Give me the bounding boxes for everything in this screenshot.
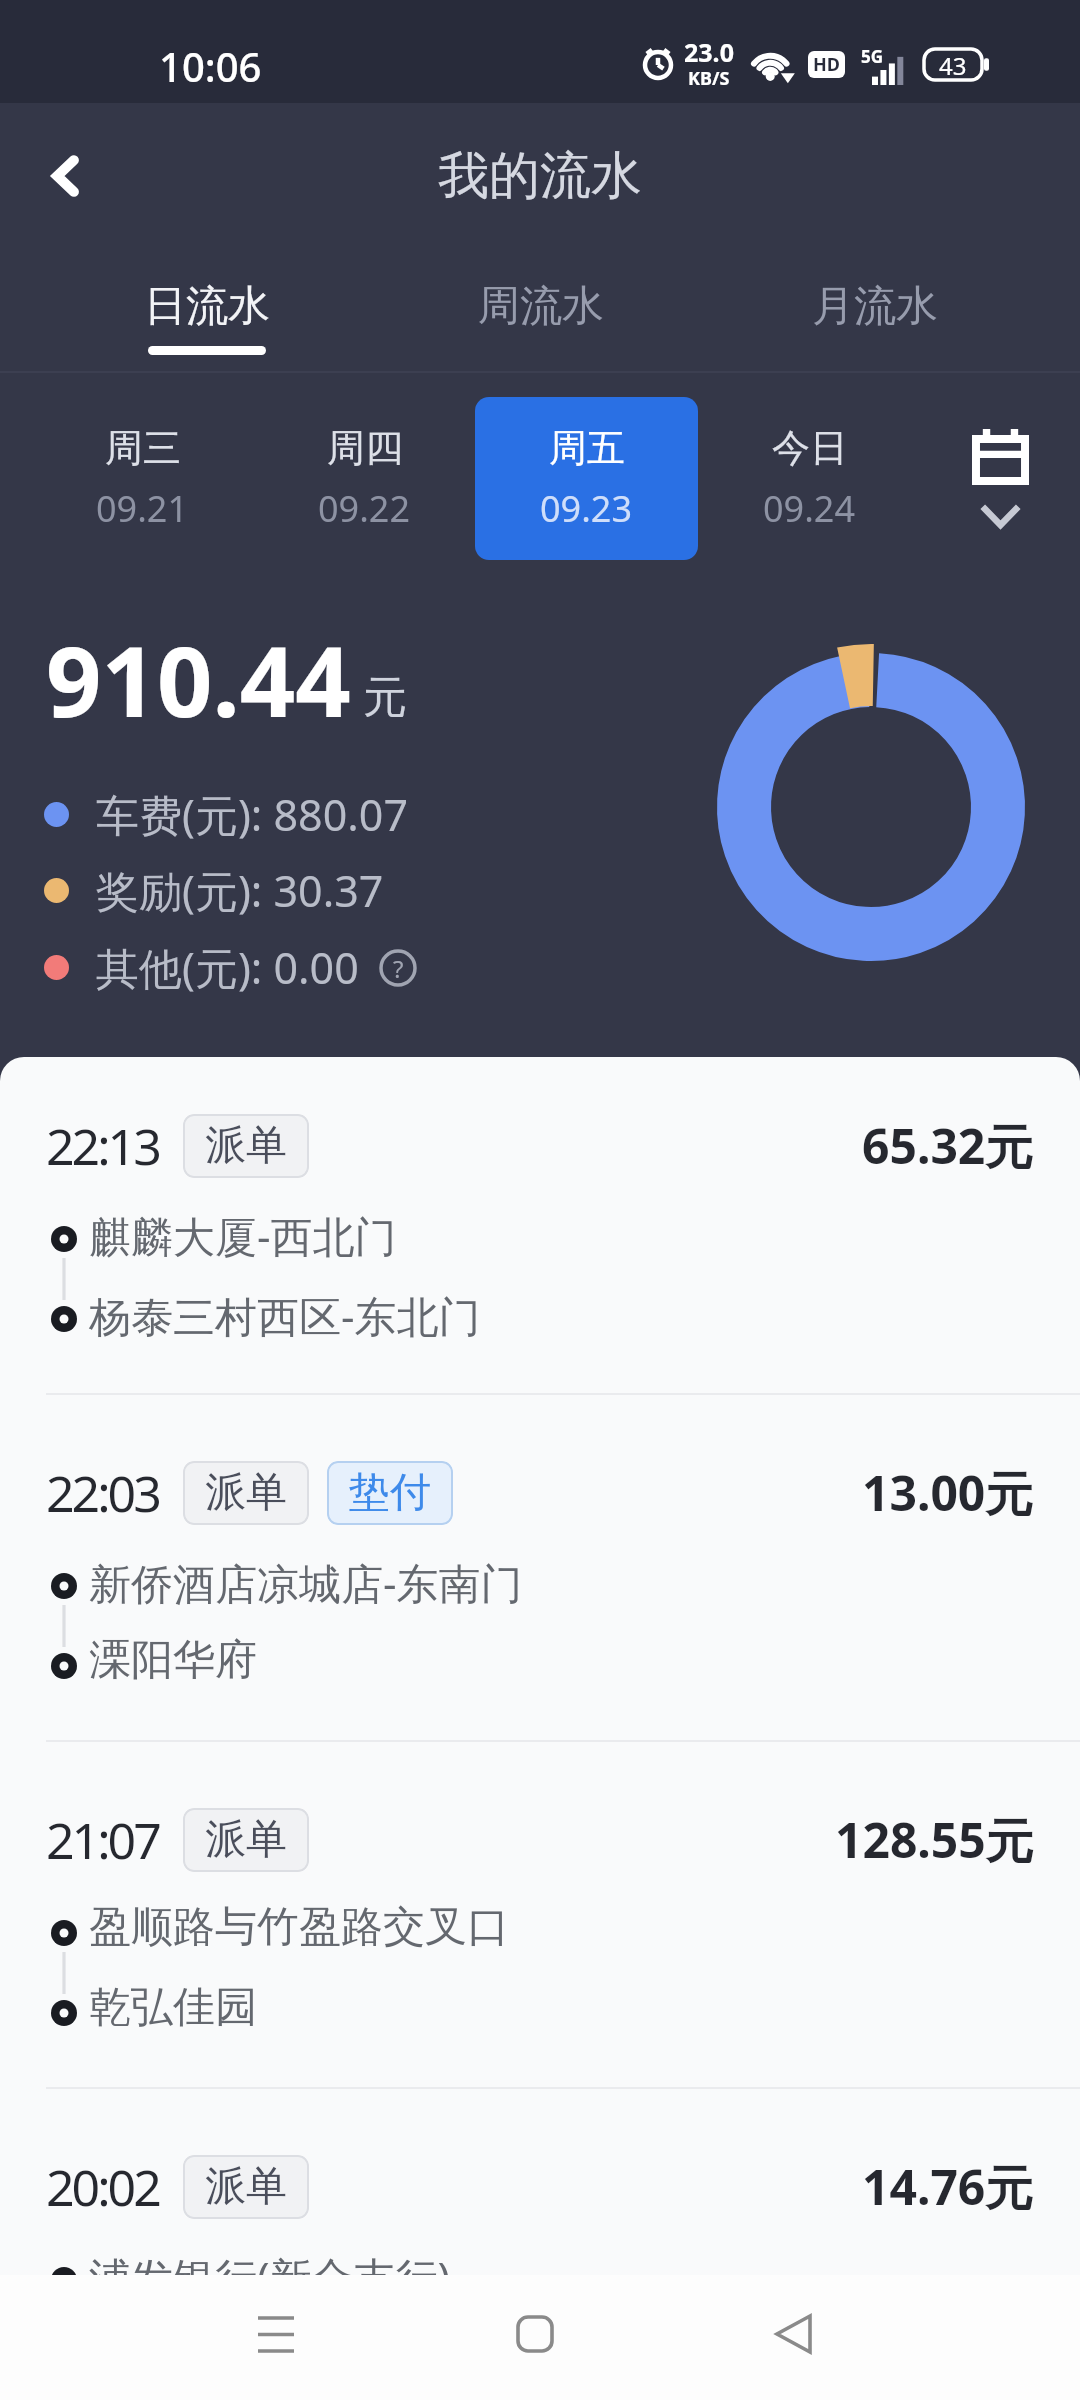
button[interactable]: 22:03 bbox=[0, 1395, 1080, 1740]
staticText: 新侨酒店凉城店-东南门 bbox=[89, 1554, 523, 1611]
staticText: 乾弘佳园 bbox=[89, 1981, 257, 2034]
button[interactable]: Back bbox=[26, 136, 106, 216]
staticText: 09.23 bbox=[540, 484, 633, 533]
staticText: 其他(元): 0.00 bbox=[96, 938, 359, 997]
button[interactable]: Back bbox=[733, 2271, 853, 2396]
staticText: 周四 bbox=[327, 424, 403, 472]
staticText: 派单 bbox=[205, 2161, 287, 2213]
staticText: 日流水 bbox=[144, 280, 270, 333]
staticText: 09.24 bbox=[763, 484, 856, 533]
staticText: 09.22 bbox=[318, 484, 411, 533]
button[interactable]: Calendar bbox=[921, 373, 1080, 583]
staticText: 65.32元 bbox=[862, 1113, 1034, 1179]
button[interactable]: 周流水 bbox=[374, 248, 708, 373]
button[interactable]: 20:02 bbox=[0, 2089, 1080, 2400]
staticText: 5G bbox=[861, 45, 884, 68]
staticText: 月流水 bbox=[812, 280, 938, 333]
button[interactable]: Home bbox=[475, 2271, 595, 2396]
staticText: 13.00元 bbox=[862, 1460, 1034, 1526]
staticText: 10:06 bbox=[159, 39, 262, 93]
staticText: 奖励(元): 30.37 bbox=[96, 861, 384, 920]
staticText: 盈顺路与竹盈路交叉口 bbox=[89, 1901, 509, 1954]
button[interactable]: 周五 bbox=[475, 397, 698, 560]
staticText: 910.44 bbox=[46, 613, 351, 745]
button[interactable]: 周三 bbox=[31, 397, 253, 560]
staticText: 浦发银行(新合支行) bbox=[89, 2248, 451, 2305]
staticText: 麒麟大厦-西北门 bbox=[89, 1207, 397, 1264]
button[interactable]: 月流水 bbox=[708, 248, 1042, 373]
staticText: 09.21 bbox=[96, 484, 189, 533]
staticText: HD bbox=[813, 52, 840, 77]
staticText: 元 bbox=[363, 670, 407, 725]
button[interactable]: 日流水 bbox=[40, 248, 374, 373]
staticText: 周五 bbox=[549, 424, 625, 472]
staticText: 垫付 bbox=[349, 1467, 431, 1519]
button[interactable]: Menu bbox=[216, 2271, 336, 2396]
staticText: 我的流水 bbox=[438, 144, 642, 208]
staticText: 周流水 bbox=[478, 280, 604, 333]
staticText: 溧阳华府 bbox=[89, 1634, 257, 1687]
staticText: 23.0 bbox=[684, 35, 734, 69]
staticText: ? bbox=[393, 952, 404, 985]
staticText: 杨泰三村西区-东北门 bbox=[89, 1287, 481, 1344]
staticText: 128.55元 bbox=[835, 1807, 1034, 1873]
staticText: 派单 bbox=[205, 1467, 287, 1519]
button[interactable]: Help bbox=[379, 949, 417, 987]
staticText: 派单 bbox=[205, 1814, 287, 1866]
staticText: 14.76元 bbox=[862, 2154, 1034, 2220]
staticText: 20:02 bbox=[46, 2153, 159, 2221]
button[interactable]: 22:13 bbox=[0, 1057, 1080, 1393]
staticText: 43 bbox=[939, 49, 967, 80]
staticText: KB/S bbox=[688, 66, 730, 91]
staticText: 22:13 bbox=[46, 1112, 159, 1180]
button[interactable]: 21:07 bbox=[0, 1742, 1080, 2087]
staticText: 周三 bbox=[105, 424, 181, 472]
button[interactable]: 今日 bbox=[698, 397, 921, 560]
staticText: 派单 bbox=[205, 1120, 287, 1172]
staticText: 车费(元): 880.07 bbox=[96, 785, 409, 844]
button[interactable]: 周四 bbox=[253, 397, 475, 560]
staticText: 今日 bbox=[772, 424, 848, 472]
staticText: 22:03 bbox=[46, 1459, 159, 1527]
staticText: 21:07 bbox=[46, 1806, 159, 1874]
